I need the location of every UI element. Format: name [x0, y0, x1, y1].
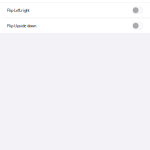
- button[interactable]: Flip Upside down: [0, 18, 150, 33]
- button[interactable]: Flip Left-right: [0, 3, 150, 17]
- staticText: Flip Upside down: [7, 23, 36, 28]
- staticText: Flip Left-right: [7, 8, 29, 13]
